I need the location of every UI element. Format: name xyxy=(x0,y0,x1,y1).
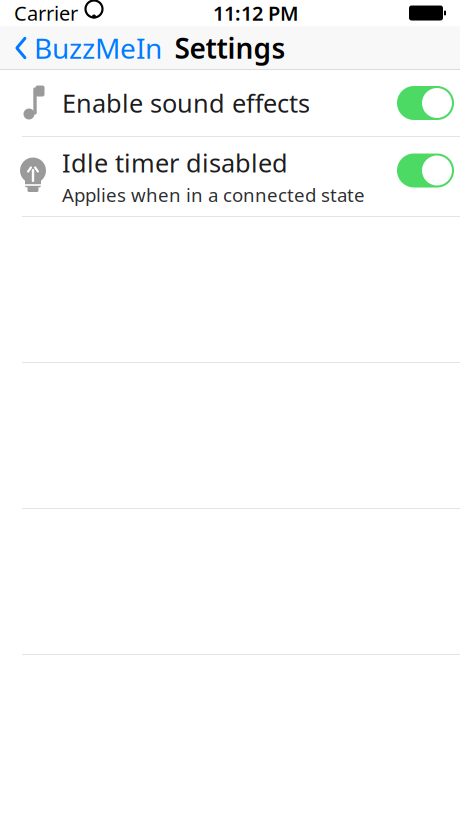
button[interactable]: Toggle xyxy=(397,86,454,120)
staticText: Carrier xyxy=(14,0,78,26)
staticText: 11:12 PM xyxy=(213,0,299,26)
staticText: Settings xyxy=(174,29,285,67)
staticText: Applies when in a connected state xyxy=(62,182,365,207)
staticText: Enable sound effects xyxy=(62,86,310,120)
button[interactable]: BuzzMeIn xyxy=(0,26,176,70)
button[interactable]: Toggle xyxy=(397,153,454,187)
staticText: Idle timer disabled xyxy=(62,146,288,179)
staticText: BuzzMeIn xyxy=(34,29,162,67)
